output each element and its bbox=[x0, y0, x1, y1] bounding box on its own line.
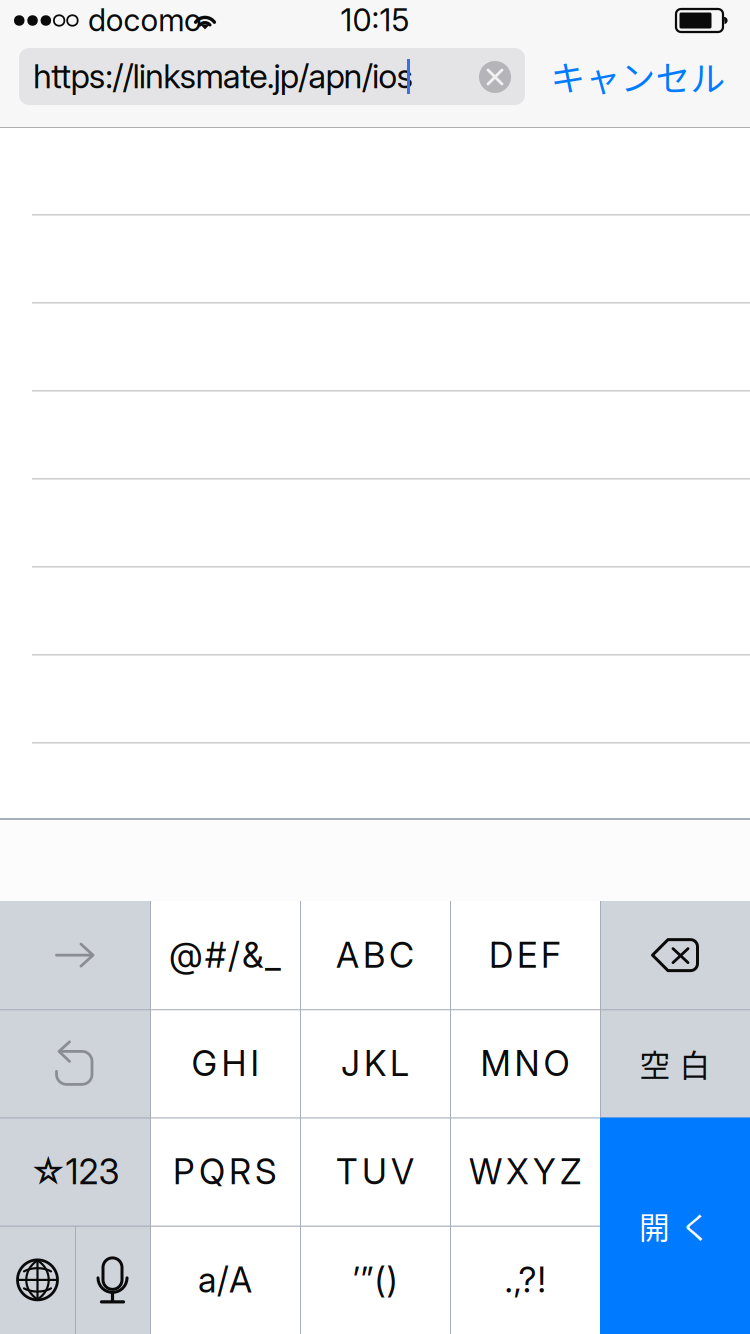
button[interactable]: ’”() bbox=[300, 1226, 450, 1334]
staticText: TUV bbox=[336, 1151, 414, 1193]
button[interactable]: https://linksmate.jp/apn/ios bbox=[19, 48, 525, 105]
staticText: GHI bbox=[191, 1042, 258, 1084]
button[interactable]: GHI bbox=[150, 1009, 300, 1117]
staticText: MNO bbox=[480, 1042, 569, 1084]
button[interactable] bbox=[0, 1009, 150, 1117]
button[interactable]: a/A bbox=[150, 1226, 300, 1334]
button[interactable] bbox=[0, 901, 150, 1009]
staticText: PQRS bbox=[173, 1151, 277, 1193]
staticText: WXYZ bbox=[469, 1151, 581, 1193]
button[interactable]: TUV bbox=[300, 1117, 450, 1226]
button[interactable]: Next keyboard bbox=[0, 1226, 75, 1334]
staticText: JKL bbox=[341, 1042, 409, 1084]
button[interactable]: MNO bbox=[450, 1009, 600, 1117]
staticText: https://linksmate.jp/apn/ios bbox=[33, 56, 413, 96]
staticText: @#/&_ bbox=[169, 934, 281, 976]
button[interactable] bbox=[600, 901, 750, 1009]
staticText: キャンセル bbox=[550, 51, 725, 102]
staticText: 開く bbox=[639, 1203, 711, 1248]
staticText: 空白 bbox=[639, 1041, 710, 1086]
staticText: a/A bbox=[198, 1259, 252, 1301]
button[interactable]: 開く bbox=[600, 1117, 750, 1334]
button[interactable]: 空白 bbox=[600, 1009, 750, 1117]
button[interactable]: Dictation bbox=[75, 1226, 150, 1334]
staticText: .,?! bbox=[504, 1259, 545, 1301]
button[interactable]: .,?! bbox=[450, 1226, 600, 1334]
button[interactable]: DEF bbox=[450, 901, 600, 1009]
staticText: ABC bbox=[336, 934, 414, 976]
button[interactable]: @#/&_ bbox=[150, 901, 300, 1009]
button[interactable]: ☆123 bbox=[0, 1117, 150, 1226]
staticText: 10:15 bbox=[340, 1, 409, 38]
staticText: ’”() bbox=[352, 1259, 397, 1301]
staticText: ☆123 bbox=[30, 1151, 119, 1193]
button[interactable]: キャンセル bbox=[543, 48, 733, 105]
staticText: DEF bbox=[489, 934, 561, 976]
button[interactable]: WXYZ bbox=[450, 1117, 600, 1226]
staticText: docomo bbox=[88, 1, 202, 38]
button[interactable]: PQRS bbox=[150, 1117, 300, 1226]
button[interactable]: ABC bbox=[300, 901, 450, 1009]
button[interactable]: JKL bbox=[300, 1009, 450, 1117]
